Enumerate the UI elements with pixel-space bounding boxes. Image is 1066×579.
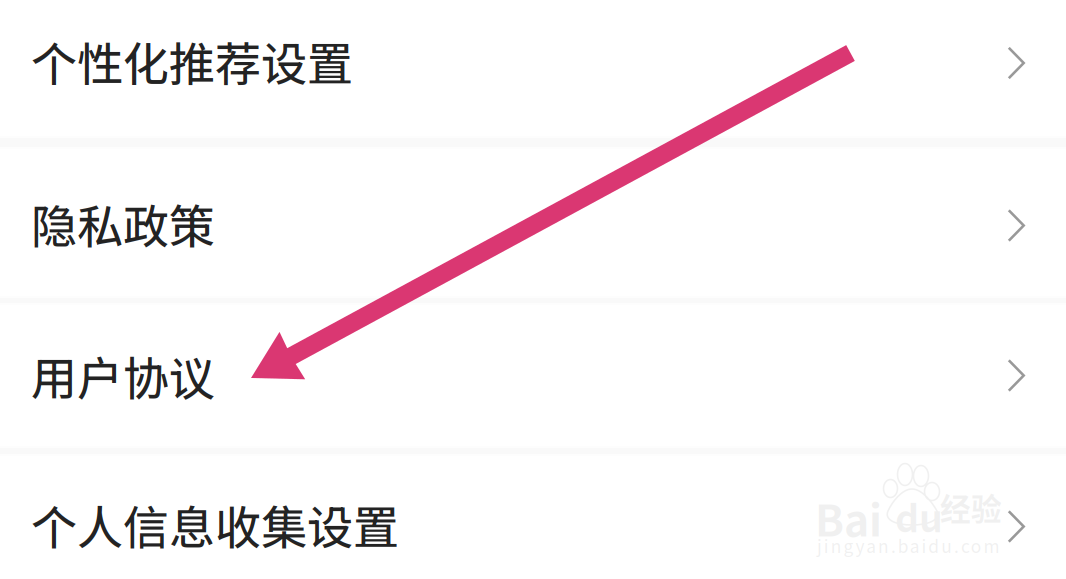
button[interactable]: 用户协议 bbox=[0, 305, 1066, 446]
button[interactable]: 隐私政策 bbox=[0, 149, 1066, 296]
staticText: Bai bbox=[815, 487, 882, 549]
staticText: 个人信息收集设置 bbox=[31, 491, 399, 558]
staticText: 个性化推荐设置 bbox=[31, 28, 353, 94]
staticText: 经验 bbox=[940, 485, 1002, 529]
staticText: 隐私政策 bbox=[31, 190, 215, 257]
staticText: 用户协议 bbox=[31, 342, 215, 409]
staticText: du bbox=[895, 489, 943, 543]
staticText: jingyan.baidu.com bbox=[817, 533, 1000, 558]
button[interactable]: 个人信息收集设置 bbox=[0, 456, 1066, 579]
button[interactable]: 个性化推荐设置 bbox=[0, 0, 1066, 136]
